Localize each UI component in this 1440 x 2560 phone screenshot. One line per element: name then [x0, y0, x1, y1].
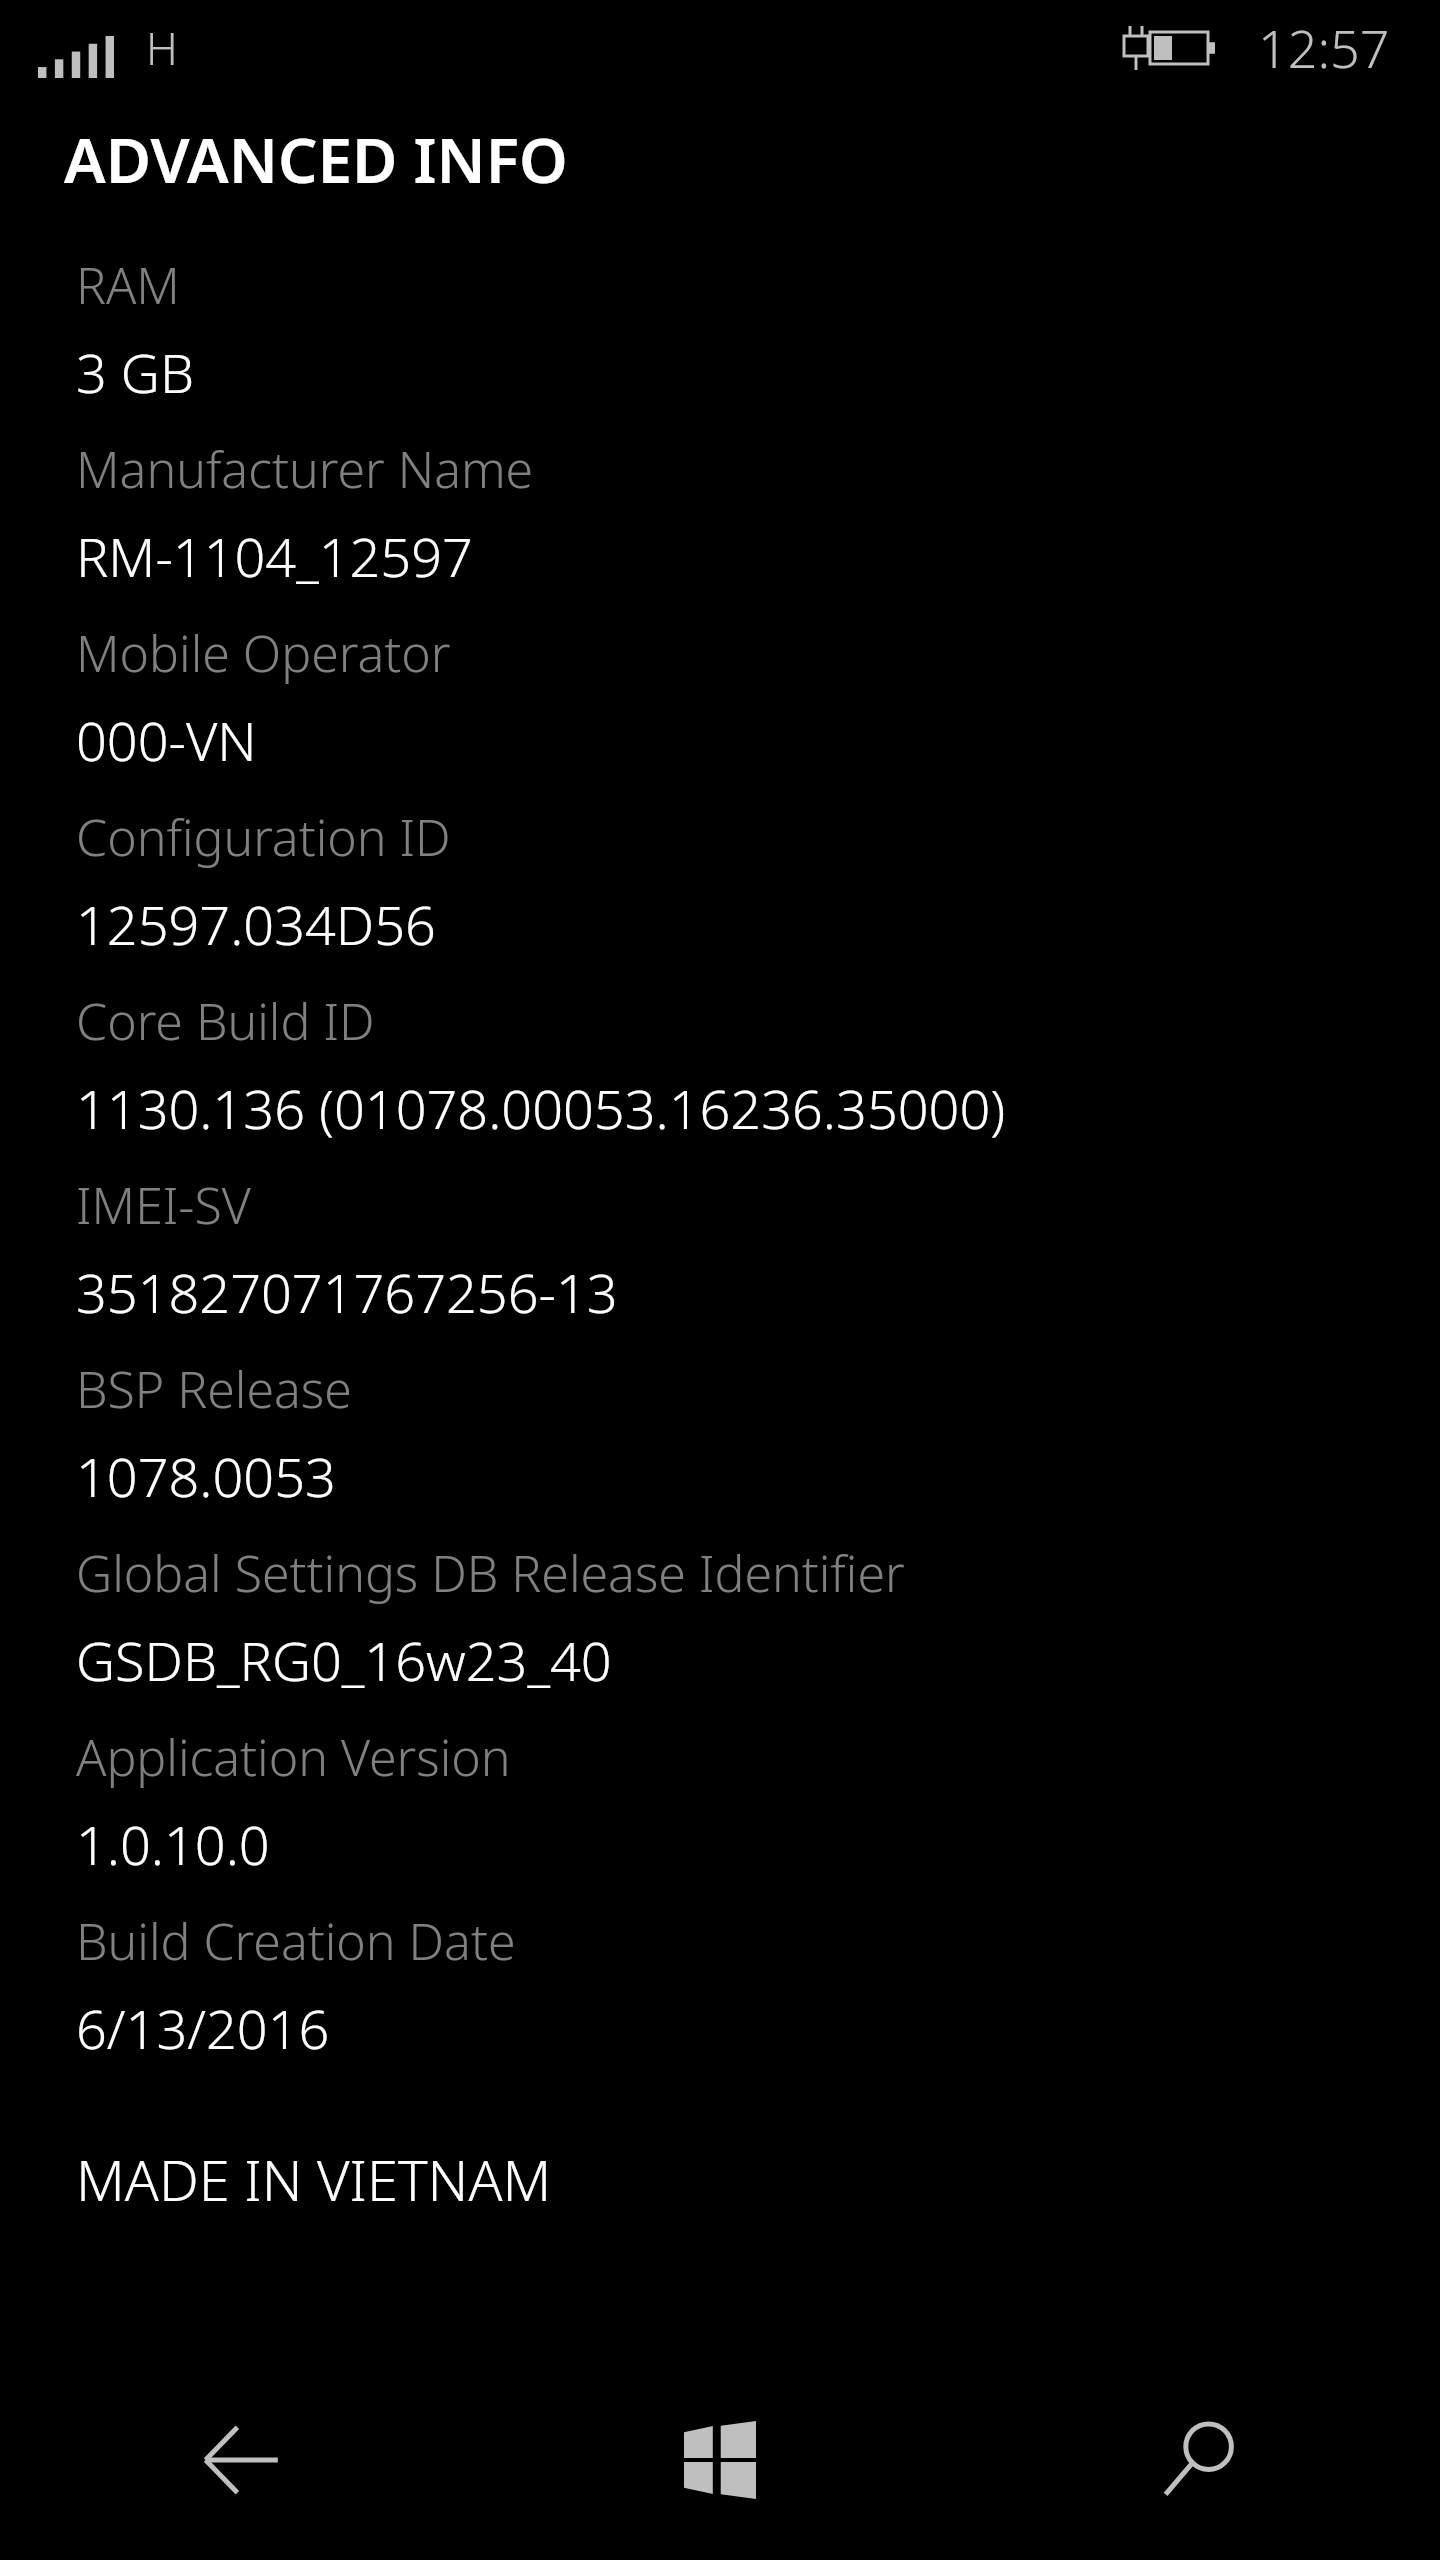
- button[interactable]: Build Creation Date: [0, 1887, 1440, 2071]
- staticText: 000-VN: [76, 703, 257, 777]
- button[interactable]: RAM: [0, 231, 1440, 415]
- staticText: GSDB_RG0_16w23_40: [76, 1623, 612, 1697]
- staticText: 1.0.10.0: [76, 1807, 270, 1881]
- button[interactable]: Back: [0, 2360, 480, 2560]
- staticText: IMEI-SV: [76, 1171, 251, 1239]
- staticText: 12597.034D56: [76, 887, 436, 961]
- button[interactable]: Search: [960, 2360, 1440, 2560]
- button[interactable]: Core Build ID: [0, 967, 1440, 1151]
- button[interactable]: Global Settings DB Release Identifier: [0, 1519, 1440, 1703]
- button[interactable]: Manufacturer Name: [0, 415, 1440, 599]
- staticText: 1078.0053: [76, 1439, 336, 1513]
- button[interactable]: Mobile Operator: [0, 599, 1440, 783]
- staticText: 6/13/2016: [76, 1991, 330, 2065]
- staticText: 351827071767256-13: [76, 1255, 618, 1329]
- staticText: MADE IN VIETNAM: [76, 2141, 552, 2217]
- staticText: 1130.136 (01078.00053.16236.35000): [76, 1071, 1006, 1145]
- staticText: Core Build ID: [76, 987, 375, 1055]
- button[interactable]: IMEI-SV: [0, 1151, 1440, 1335]
- staticText: Configuration ID: [76, 803, 451, 871]
- button[interactable]: Application Version: [0, 1703, 1440, 1887]
- staticText: 12:57: [1258, 12, 1390, 83]
- staticText: Global Settings DB Release Identifier: [76, 1539, 905, 1607]
- staticText: BSP Release: [76, 1355, 352, 1423]
- staticText: Build Creation Date: [76, 1907, 516, 1975]
- button[interactable]: Start: [480, 2360, 960, 2560]
- staticText: H: [146, 18, 178, 78]
- staticText: RM-1104_12597: [76, 519, 473, 593]
- staticText: Application Version: [76, 1723, 511, 1791]
- staticText: 3 GB: [76, 335, 195, 409]
- staticText: Manufacturer Name: [76, 435, 534, 503]
- staticText: RAM: [76, 251, 180, 319]
- button[interactable]: BSP Release: [0, 1335, 1440, 1519]
- staticText: ADVANCED INFO: [64, 117, 568, 201]
- button[interactable]: Configuration ID: [0, 783, 1440, 967]
- staticText: Mobile Operator: [76, 619, 451, 687]
